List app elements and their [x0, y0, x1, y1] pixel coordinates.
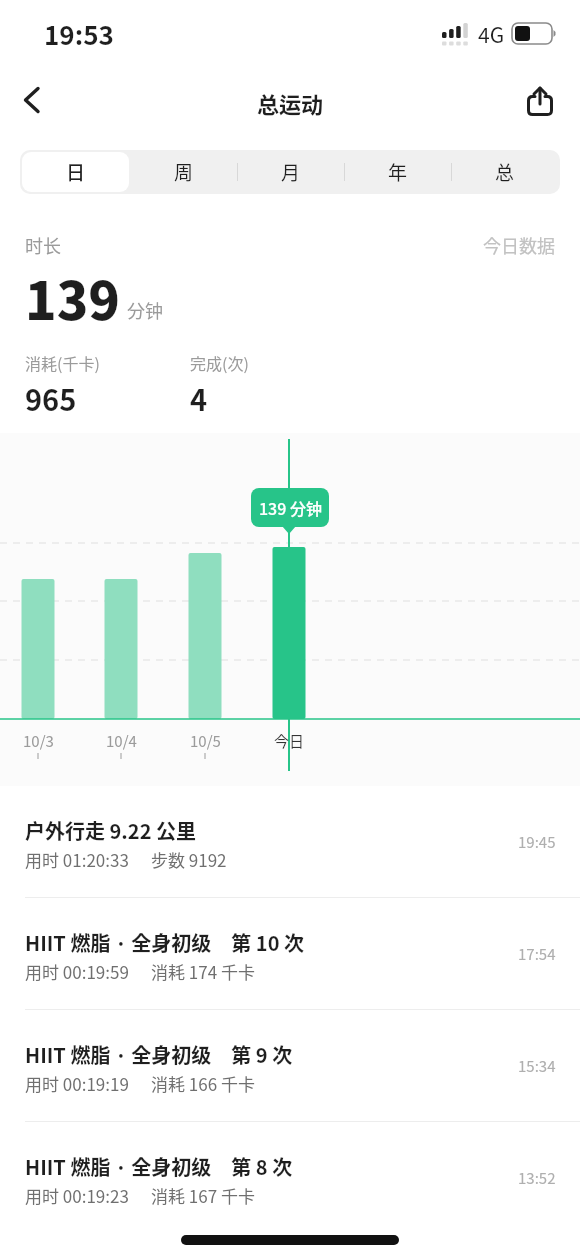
staticText: 消耗 166 千卡 — [151, 1071, 255, 1096]
button[interactable] — [518, 79, 562, 123]
staticText: 15:34 — [518, 1055, 556, 1077]
staticText: 步数 9192 — [151, 847, 227, 872]
staticText: 消耗(千卡) — [25, 351, 100, 374]
staticText: 总运动 — [257, 87, 324, 119]
button[interactable]: HIIT 燃脂 · 全身初级 第 10 次 — [0, 898, 580, 1009]
staticText: 19:45 — [518, 831, 556, 853]
button[interactable]: 周 — [130, 152, 237, 192]
staticText: 用时 00:19:23 — [25, 1183, 129, 1208]
button[interactable]: 年 — [345, 152, 451, 192]
staticText: 139 — [25, 260, 121, 335]
staticText: 分钟 — [127, 297, 163, 323]
button[interactable]: 日 — [22, 152, 129, 192]
staticText: 日 — [66, 158, 86, 186]
staticText: 今日数据 — [483, 232, 555, 258]
staticText: 用时 00:19:19 — [25, 1071, 129, 1096]
staticText: 周 — [174, 158, 194, 186]
button[interactable]: 总 — [452, 152, 558, 192]
staticText: 17:54 — [518, 943, 556, 965]
staticText: HIIT 燃脂 · 全身初级 第 9 次 — [25, 1040, 293, 1069]
button[interactable]: HIIT 燃脂 · 全身初级 第 9 次 — [0, 1010, 580, 1121]
staticText: 完成(次) — [190, 351, 249, 374]
staticText: 10/3 — [23, 730, 54, 752]
staticText: 13:52 — [518, 1167, 556, 1189]
staticText: 4 — [190, 377, 208, 419]
staticText: 10/4 — [106, 730, 137, 752]
staticText: 今日 — [274, 730, 305, 752]
staticText: 消耗 167 千卡 — [151, 1183, 255, 1208]
staticText: 消耗 174 千卡 — [151, 959, 255, 984]
staticText: 139 分钟 — [259, 496, 322, 519]
staticText: HIIT 燃脂 · 全身初级 第 8 次 — [25, 1152, 293, 1181]
staticText: 总 — [495, 158, 515, 186]
staticText: 月 — [281, 158, 301, 186]
staticText: 用时 01:20:33 — [25, 847, 129, 872]
staticText: 10/5 — [190, 730, 221, 752]
button[interactable]: 户外行走 9.22 公里 — [0, 786, 580, 897]
staticText: 年 — [388, 158, 408, 186]
staticText: 965 — [25, 377, 77, 419]
staticText: 时长 — [25, 232, 61, 258]
staticText: 4G — [478, 19, 505, 49]
button[interactable]: HIIT 燃脂 · 全身初级 第 8 次 — [0, 1122, 580, 1233]
button[interactable]: 月 — [238, 152, 344, 192]
staticText: HIIT 燃脂 · 全身初级 第 10 次 — [25, 928, 304, 957]
staticText: 用时 00:19:59 — [25, 959, 129, 984]
staticText: 户外行走 9.22 公里 — [25, 816, 196, 845]
staticText: 19:53 — [44, 15, 114, 53]
button[interactable] — [10, 79, 54, 123]
